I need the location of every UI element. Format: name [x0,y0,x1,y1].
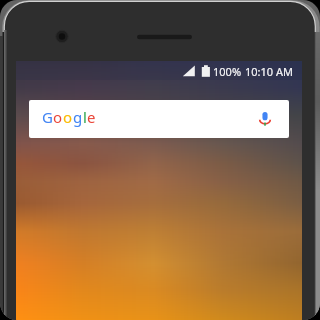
staticText: l [83,107,87,127]
staticText: o [63,107,73,127]
button[interactable]: G [29,100,289,138]
staticText: 100% [213,64,242,79]
staticText: G [42,107,53,127]
staticText: o [53,107,63,127]
staticText: e [87,107,96,127]
staticText: 10:10 AM [245,64,293,79]
button[interactable]: Voice search [256,110,274,128]
staticText: g [73,107,83,127]
